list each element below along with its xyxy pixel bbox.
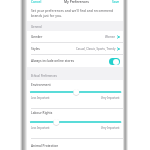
button[interactable]: Styles (27, 43, 123, 55)
staticText: Ethical Preferences (31, 74, 57, 78)
staticText: General (31, 25, 42, 29)
other: Always include online stores toggle (109, 58, 120, 65)
staticText: Set your preferences and we'll find and … (31, 8, 118, 18)
staticText: Animal Protection (31, 144, 59, 148)
staticText: Styles (31, 47, 40, 51)
staticText: Labour Rights (31, 111, 53, 115)
staticText: Very Important (101, 126, 120, 130)
staticText: Less Important (31, 126, 50, 130)
staticText: My Preferences (64, 0, 89, 3)
button[interactable]: Gender (27, 31, 123, 43)
button[interactable]: Cancel (27, 0, 42, 3)
staticText: Gender (31, 35, 43, 39)
staticText: Environment (31, 83, 51, 87)
staticText: Cancel (31, 0, 42, 3)
button[interactable]: Always include online stores (27, 55, 123, 67)
staticText: Very Important (101, 96, 120, 100)
button[interactable]: Save (112, 0, 123, 3)
staticText: Save (112, 0, 120, 3)
button[interactable]: Labour Rights importance slider (27, 119, 123, 125)
staticText: Women (105, 35, 116, 39)
button[interactable]: Environment importance slider (27, 89, 123, 95)
staticText: Casual, Classic, Sports, Trendy (76, 47, 116, 51)
staticText: Less Important (31, 96, 50, 100)
staticText: Always include online stores (31, 59, 75, 63)
